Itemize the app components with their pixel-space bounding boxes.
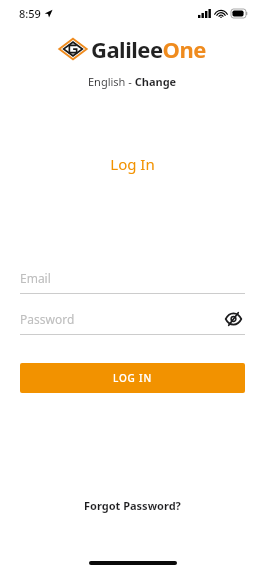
staticText: GalileeOne	[91, 34, 206, 64]
button[interactable]: English - Change	[82, 72, 183, 91]
staticText: English - Change	[88, 74, 177, 89]
button[interactable]: Forgot Password?	[76, 494, 189, 517]
staticText: Email	[20, 270, 51, 286]
staticText: LOG IN	[113, 371, 152, 385]
staticText: Forgot Password?	[84, 498, 181, 513]
button[interactable]: Show password	[221, 308, 245, 330]
button[interactable]: LOG IN	[20, 363, 245, 393]
button[interactable]: Email	[20, 267, 245, 294]
staticText: Log In	[0, 154, 265, 174]
button[interactable]: Password	[20, 308, 221, 330]
staticText: Password	[20, 311, 75, 327]
staticText: 8:59	[19, 6, 41, 21]
